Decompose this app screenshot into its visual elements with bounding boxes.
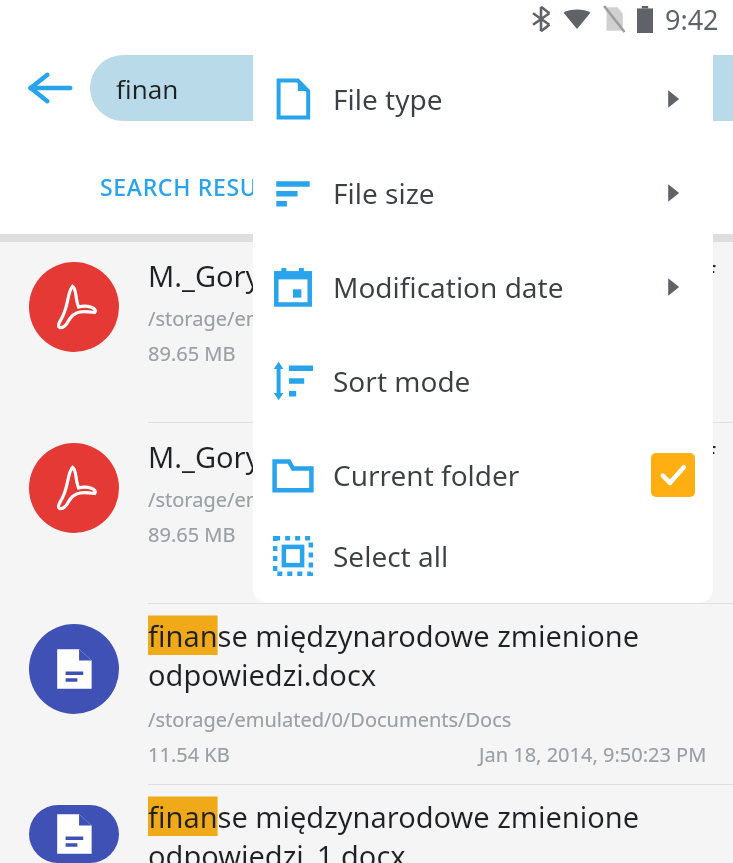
staticText: M._Gorynia_-_Konkurencyjnosc_2009_.pdf	[148, 437, 715, 476]
staticText: 89.65 MB	[148, 340, 236, 367]
staticText: /storage/emulated/0/Download	[148, 486, 446, 513]
staticText: Current folder	[333, 456, 633, 494]
button[interactable]: File type	[253, 52, 713, 146]
button[interactable]: finanse międzynarodowe zmienione	[0, 604, 733, 784]
staticText: Jan 18, 2014, 9:50:23 PM	[479, 741, 707, 768]
staticText: Modification date	[333, 268, 633, 306]
staticText: File type	[333, 80, 633, 118]
button[interactable]: Sort mode	[253, 334, 713, 428]
staticText: finanse międzynarodowe zmienione	[148, 797, 639, 836]
button[interactable]: File size	[253, 146, 713, 240]
staticText: finan	[116, 71, 179, 106]
staticText: odpowiedzi_1.docx	[148, 836, 406, 863]
staticText: /storage/emulated/0/Documents/Docs	[148, 706, 512, 733]
staticText: /storage/emulated/0/Download	[148, 305, 446, 332]
staticText: Select all	[333, 537, 633, 575]
button[interactable]: Modification date	[253, 240, 713, 334]
staticText: 11.54 KB	[148, 741, 230, 768]
button[interactable]: M._Gorynia_-_Konkurencyjnosc_2009_.pdf	[0, 423, 733, 603]
staticText: M._Gorynia_-_Konkurencyjnosc_2009_.pdf	[148, 256, 715, 295]
staticText: odpowiedzi.docx	[148, 655, 377, 694]
staticText: 9:42	[665, 1, 719, 38]
button[interactable]: Back	[14, 52, 86, 124]
button[interactable]: Current folder	[253, 428, 713, 522]
staticText: 89.65 MB	[148, 521, 236, 548]
button[interactable]: finan	[90, 55, 733, 121]
button[interactable]: Select all	[253, 522, 713, 589]
button[interactable]: M._Gorynia_-_Konkurencyjnosc_2009_.pdf	[0, 242, 733, 422]
staticText: Sort mode	[333, 362, 633, 400]
staticText: SEARCH RESULTS	[100, 171, 298, 202]
staticText: finanse międzynarodowe zmienione	[148, 616, 639, 655]
button[interactable]: finanse międzynarodowe zmienione	[0, 785, 733, 863]
staticText: File size	[333, 174, 633, 212]
button[interactable]: SEARCH RESULTS	[100, 171, 298, 202]
